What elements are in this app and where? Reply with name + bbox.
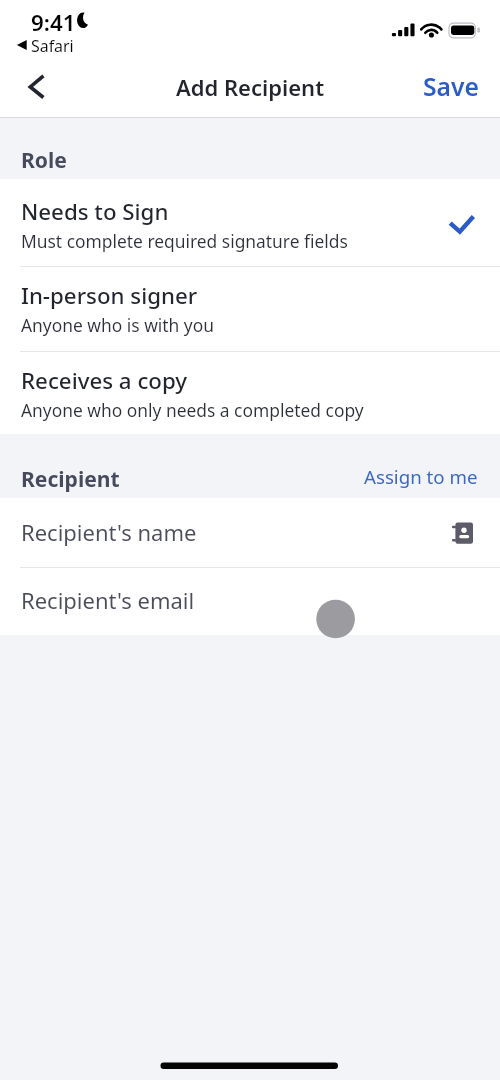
staticText: Needs to Sign (21, 196, 169, 226)
staticText: In-person signer (21, 280, 198, 310)
button[interactable]: Back (0, 59, 54, 113)
button[interactable]: Needs to Sign (0, 179, 500, 266)
button[interactable]: Assign to me (364, 464, 500, 498)
staticText: Anyone who only needs a completed copy (21, 398, 364, 422)
staticText: Recipient's name (21, 517, 197, 547)
staticText: Safari (31, 35, 74, 57)
staticText: Must complete required signature fields (21, 229, 348, 253)
button[interactable]: In-person signer (0, 267, 500, 351)
staticText: Recipient (21, 464, 120, 493)
staticText: Recipient's email (21, 585, 195, 615)
button[interactable]: Save (423, 59, 500, 104)
staticText: Role (21, 145, 67, 174)
staticText: 9:41 (31, 7, 76, 37)
staticText: Add Recipient (0, 72, 500, 102)
button[interactable]: Recipient's email (0, 568, 500, 635)
staticText: Receives a copy (21, 365, 188, 395)
button[interactable]: Recipient's name (0, 498, 500, 567)
staticText: Anyone who is with you (21, 313, 214, 337)
button[interactable]: Receives a copy (0, 352, 500, 434)
button[interactable]: Choose from contacts (448, 516, 480, 548)
